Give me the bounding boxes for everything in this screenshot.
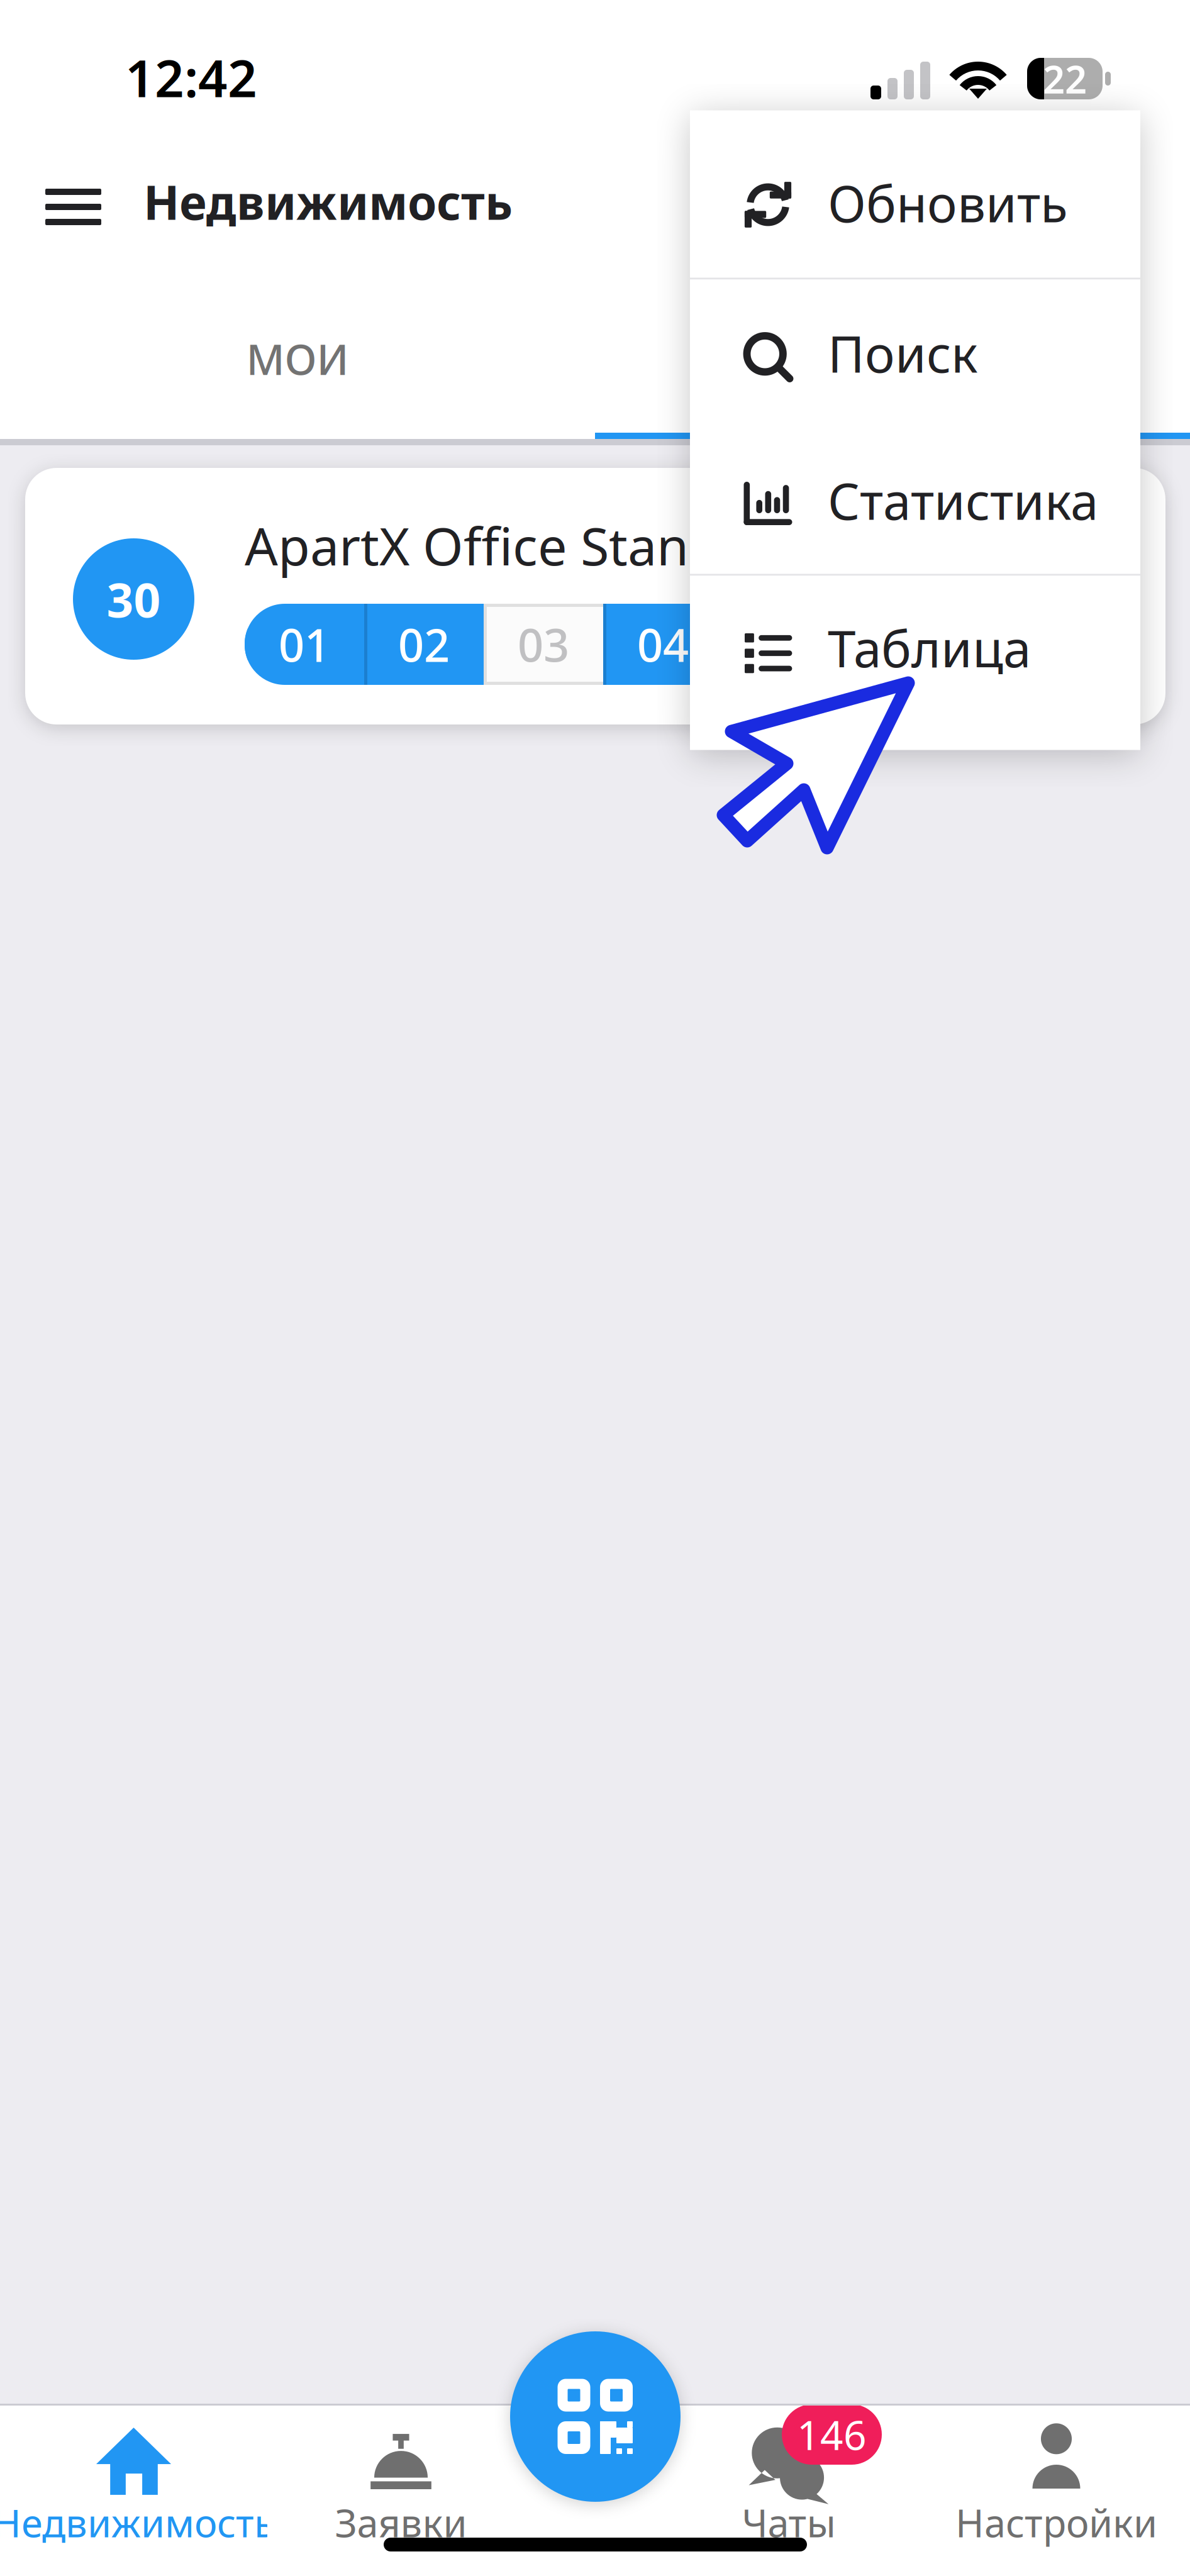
staticText: Статистика bbox=[828, 467, 1098, 534]
button[interactable]: Scan QR code bbox=[510, 2331, 681, 2502]
staticText: Таблица bbox=[828, 614, 1031, 681]
button[interactable]: Недвижимость bbox=[0, 2404, 267, 2576]
button[interactable]: Настройки bbox=[923, 2404, 1190, 2576]
button[interactable]: Menu bbox=[15, 153, 131, 260]
staticText: 02 bbox=[398, 614, 450, 674]
staticText: 04 bbox=[637, 614, 689, 674]
staticText: Недвижимость bbox=[143, 170, 513, 233]
button[interactable]: Поиск bbox=[690, 280, 1140, 427]
staticText: Заявки bbox=[335, 2497, 467, 2548]
staticText: ApartX Office Standard bbox=[245, 511, 802, 580]
staticText: Недвижимость bbox=[0, 2497, 275, 2548]
staticText: 22 bbox=[1043, 53, 1087, 104]
staticText: Настройки bbox=[955, 2497, 1157, 2548]
button[interactable]: Таблица bbox=[690, 576, 1140, 750]
staticText: МОИ bbox=[246, 331, 349, 387]
button[interactable]: Чаты bbox=[655, 2404, 923, 2576]
staticText: 12:42 bbox=[125, 43, 257, 111]
staticText: 05 bbox=[757, 614, 808, 674]
staticText: Обновить bbox=[828, 169, 1068, 236]
button[interactable]: МОИ bbox=[0, 279, 595, 439]
staticText: ВСЕ bbox=[854, 331, 931, 387]
staticText: 07 bbox=[996, 614, 1047, 674]
staticText: 30 bbox=[107, 568, 161, 630]
button[interactable]: Статистика bbox=[690, 427, 1140, 574]
button[interactable]: Заявки bbox=[267, 2404, 535, 2576]
button[interactable]: Обновить bbox=[690, 110, 1140, 278]
button[interactable]: 30 bbox=[25, 468, 1165, 724]
staticText: Поиск bbox=[828, 320, 977, 387]
button[interactable]: ВСЕ bbox=[595, 279, 1190, 439]
staticText: 146 bbox=[797, 2408, 867, 2461]
staticText: Чаты bbox=[742, 2497, 836, 2548]
staticText: 03 bbox=[518, 614, 569, 674]
staticText: 06 bbox=[876, 614, 928, 674]
staticText: 01 bbox=[279, 614, 330, 674]
